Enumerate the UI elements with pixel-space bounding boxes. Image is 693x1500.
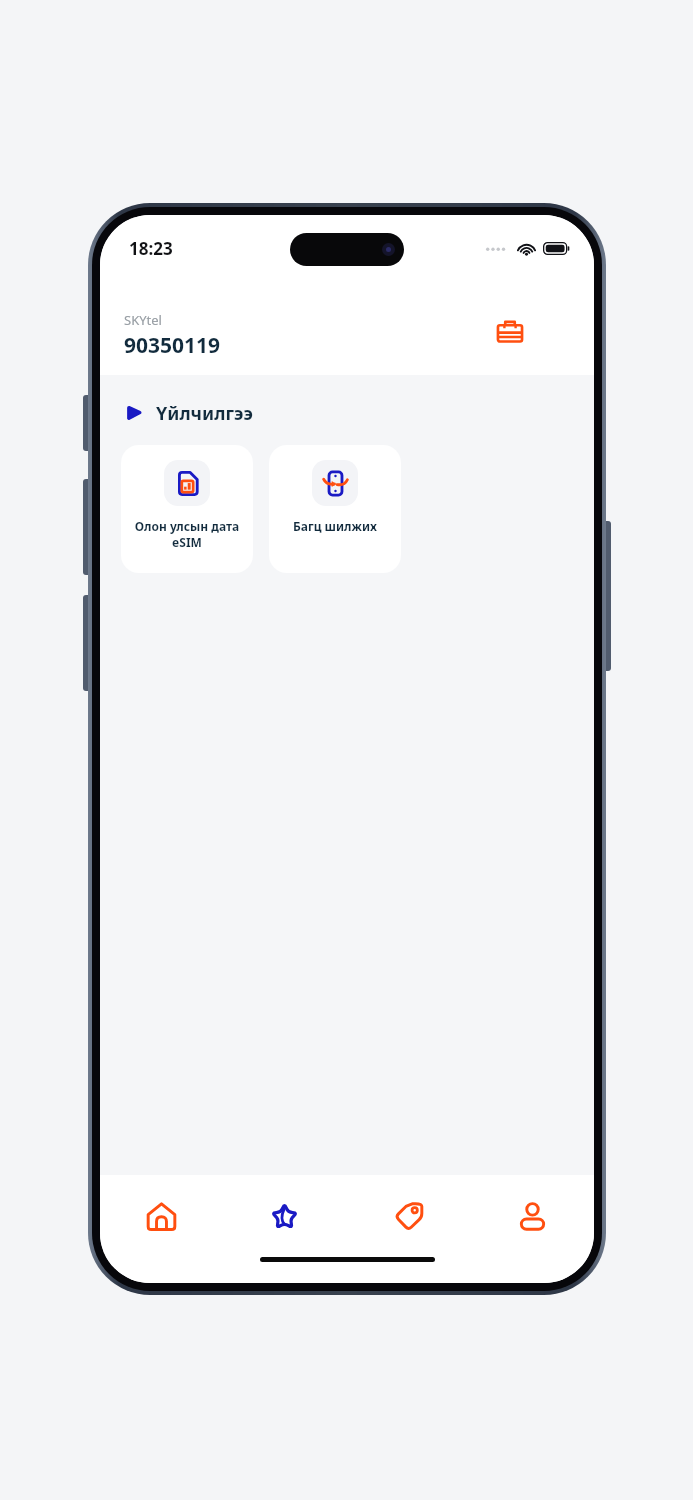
staticText: 90350119	[124, 331, 221, 360]
staticText: 18:23	[129, 237, 173, 260]
button[interactable]: Briefcase	[486, 308, 534, 356]
staticText: Олон улсын дата eSIM	[125, 518, 249, 551]
button[interactable]: Багц шилжих	[269, 445, 401, 573]
button[interactable]: Rewards	[223, 1175, 346, 1283]
staticText: Багц шилжих	[273, 518, 397, 534]
button[interactable]: Home	[100, 1175, 223, 1283]
staticText: Үйлчилгээ	[156, 401, 253, 426]
button[interactable]: Profile	[470, 1175, 594, 1283]
button[interactable]: Олон улсын дата eSIM	[121, 445, 253, 573]
button[interactable]: Offers	[346, 1175, 470, 1283]
staticText: SKYtel	[124, 311, 162, 329]
